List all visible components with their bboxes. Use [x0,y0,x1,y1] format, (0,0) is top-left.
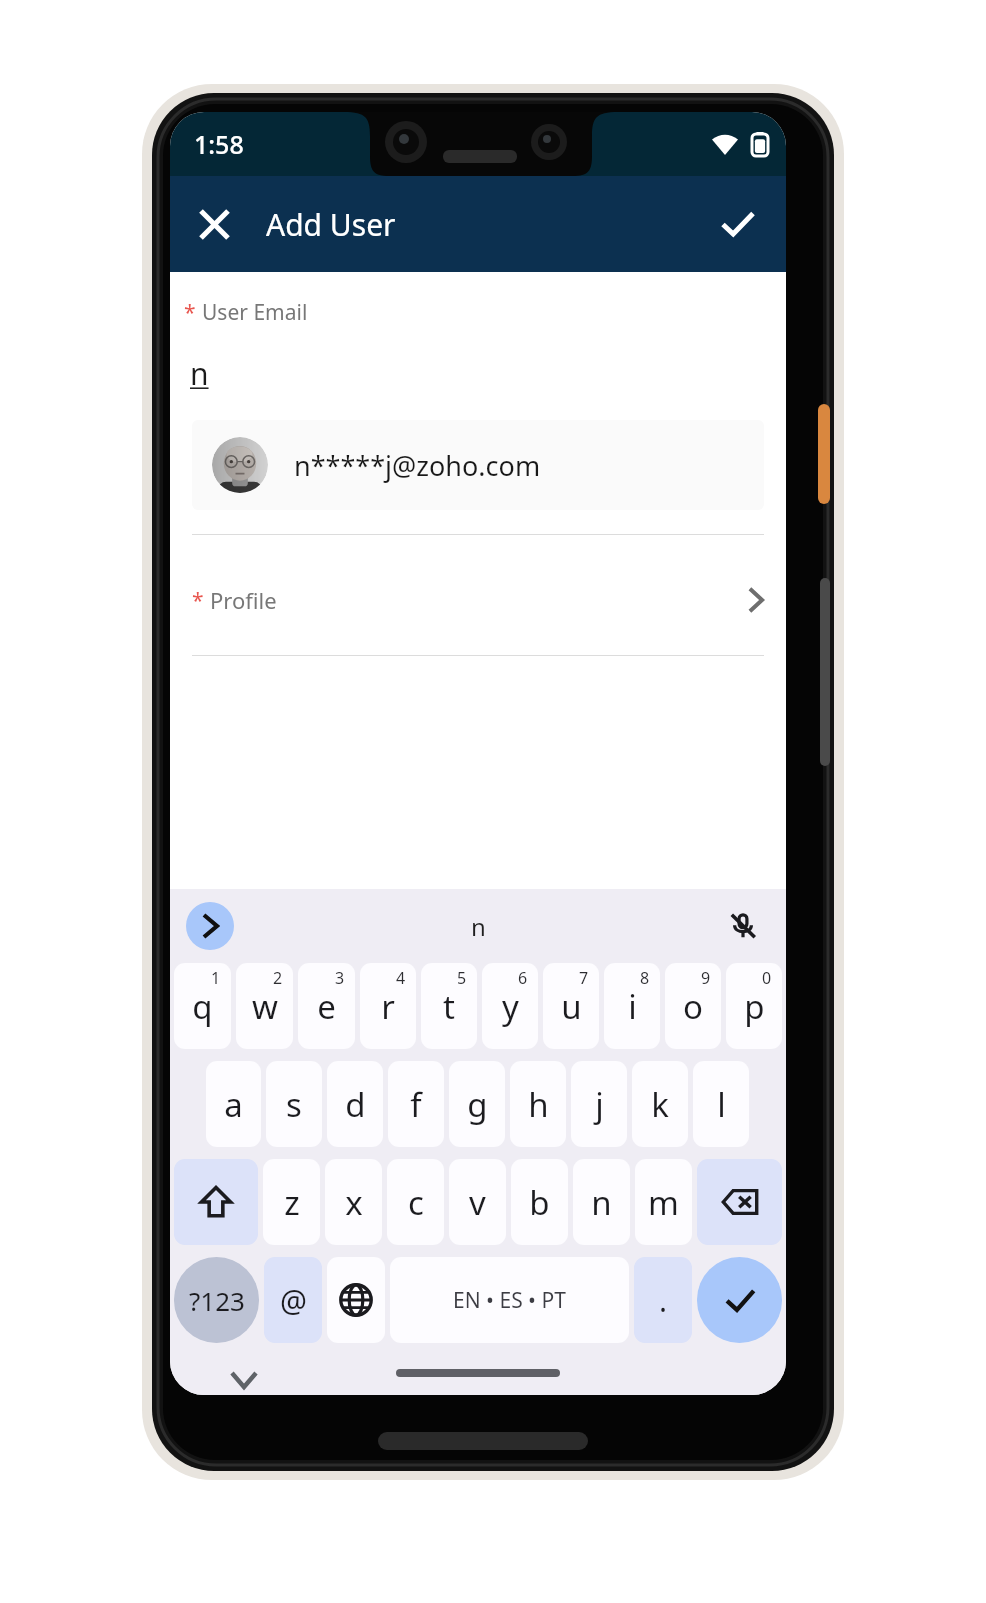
staticText: n [591,1180,612,1225]
button[interactable]: * [170,573,786,627]
staticText: k [651,1082,669,1127]
button[interactable]: EN • ES • PT [390,1257,629,1343]
button[interactable]: q [174,963,231,1049]
button[interactable]: f [388,1061,444,1147]
staticText: EN • ES • PT [453,1286,566,1315]
button[interactable]: @ [264,1257,322,1343]
button[interactable]: Shift [174,1159,258,1245]
staticText: n*****j@zoho.com [294,447,541,484]
staticText: e [317,984,336,1029]
button[interactable]: v [449,1159,506,1245]
button[interactable]: b [511,1159,568,1245]
button[interactable]: More suggestions [186,902,234,950]
button[interactable]: n*****j@zoho.com [192,420,764,510]
button[interactable]: r [360,963,416,1049]
staticText: w [252,984,278,1029]
staticText: 5 [457,967,467,989]
staticText: f [410,1082,422,1127]
staticText: Profile [210,585,277,615]
staticText: o [683,984,703,1029]
staticText: h [528,1082,549,1127]
staticText: ?123 [189,1283,245,1318]
staticText: Add User [266,204,396,245]
button[interactable]: m [635,1159,692,1245]
button[interactable]: l [693,1061,749,1147]
button[interactable]: i [604,963,660,1049]
button[interactable]: Hide keyboard [222,1365,266,1395]
button[interactable]: t [421,963,477,1049]
staticText: j [595,1082,604,1127]
button[interactable]: d [327,1061,383,1147]
button[interactable]: j [571,1061,627,1147]
staticText: n [471,910,486,943]
button[interactable]: n [573,1159,630,1245]
staticText: l [717,1082,726,1127]
staticText: r [381,984,395,1029]
staticText: 8 [640,967,650,989]
staticText: c [408,1180,424,1225]
staticText: . [659,1280,668,1321]
button[interactable]: k [632,1061,688,1147]
button[interactable]: h [510,1061,566,1147]
button[interactable]: a [206,1061,261,1147]
button[interactable]: y [482,963,538,1049]
staticText: * [192,586,204,615]
staticText: 6 [518,967,528,989]
button[interactable]: Enter [697,1257,782,1343]
button[interactable]: Save [708,194,768,254]
staticText: 4 [396,967,406,989]
staticText: 9 [701,967,711,989]
staticText: m [648,1180,679,1225]
staticText: q [192,984,213,1029]
staticText: t [443,984,455,1029]
staticText: y [502,984,519,1029]
button[interactable]: s [266,1061,322,1147]
staticText: i [628,984,637,1029]
button[interactable]: . [634,1257,692,1343]
staticText: u [561,984,582,1029]
staticText: @ [280,1280,307,1321]
button[interactable]: Change language [327,1257,385,1343]
staticText: v [469,1180,486,1225]
staticText: d [345,1082,366,1127]
button[interactable]: g [449,1061,505,1147]
button[interactable]: e [298,963,355,1049]
staticText: * [184,298,196,327]
staticText: 0 [762,967,772,989]
staticText: 2 [273,967,283,989]
staticText: User Email [202,298,308,327]
staticText: 7 [579,967,589,989]
button[interactable]: Backspace [697,1159,782,1245]
button[interactable]: Close [184,194,244,254]
staticText: n [190,353,209,394]
staticText: 1 [211,967,221,989]
button[interactable]: z [263,1159,320,1245]
staticText: 1:58 [194,127,244,161]
staticText: a [224,1082,243,1127]
button[interactable]: x [325,1159,382,1245]
staticText: g [467,1082,488,1127]
button[interactable]: w [236,963,293,1049]
button[interactable]: u [543,963,599,1049]
button[interactable]: ?123 [174,1257,259,1343]
button[interactable]: o [665,963,721,1049]
button[interactable]: c [387,1159,444,1245]
staticText: 3 [335,967,345,989]
staticText: b [529,1180,550,1225]
staticText: p [744,984,765,1029]
button[interactable]: p [726,963,782,1049]
staticText: z [284,1180,300,1225]
staticText: x [345,1180,363,1225]
staticText: s [286,1082,302,1127]
button[interactable]: Voice input off [720,903,766,949]
